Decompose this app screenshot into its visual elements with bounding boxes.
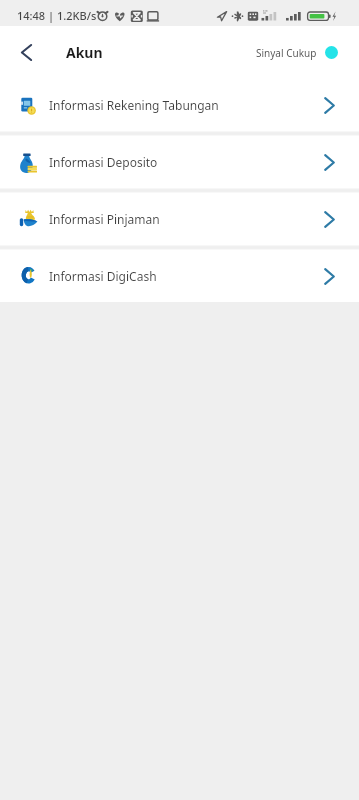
- button[interactable]: Informasi Deposito: [0, 136, 359, 188]
- staticText: Akun: [66, 43, 103, 62]
- button[interactable]: Informasi Pinjaman: [0, 193, 359, 245]
- staticText: Informasi Pinjaman: [49, 211, 160, 227]
- staticText: Informasi DigiCash: [49, 268, 157, 284]
- staticText: Sinyal Cukup: [256, 46, 317, 60]
- staticText: 14:48 | 1.2KB/s: [17, 8, 97, 23]
- button[interactable]: Informasi DigiCash: [0, 250, 359, 302]
- staticText: Informasi Deposito: [49, 154, 158, 170]
- button[interactable]: Informasi Rekening Tabungan: [0, 79, 359, 131]
- staticText: Informasi Rekening Tabungan: [49, 97, 219, 113]
- button[interactable]: Back: [0, 26, 52, 79]
